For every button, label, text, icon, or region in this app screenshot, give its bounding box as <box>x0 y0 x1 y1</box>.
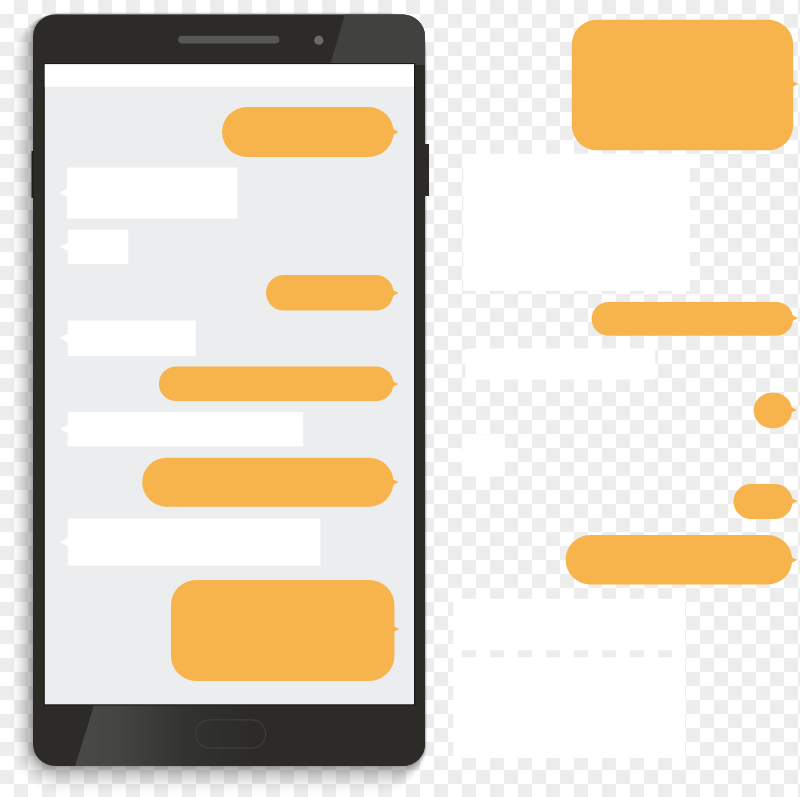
button[interactable]: Bubble asset 3 <box>592 302 794 336</box>
button[interactable]: Bubble asset 8 <box>566 535 793 584</box>
button[interactable]: Bubble asset 5 <box>754 393 792 428</box>
button[interactable]: Sent message 2 <box>266 275 394 311</box>
button[interactable]: Sent message 3 <box>159 367 394 401</box>
button[interactable]: Sent message 1 <box>222 107 394 157</box>
button[interactable]: Bubble asset 1 <box>572 20 793 151</box>
button[interactable]: Sent message 4 <box>142 458 393 507</box>
button[interactable]: Received message 3 <box>68 321 196 357</box>
button[interactable]: Sent message 5 <box>171 580 394 681</box>
button[interactable]: Bubble asset 7 <box>734 484 793 519</box>
